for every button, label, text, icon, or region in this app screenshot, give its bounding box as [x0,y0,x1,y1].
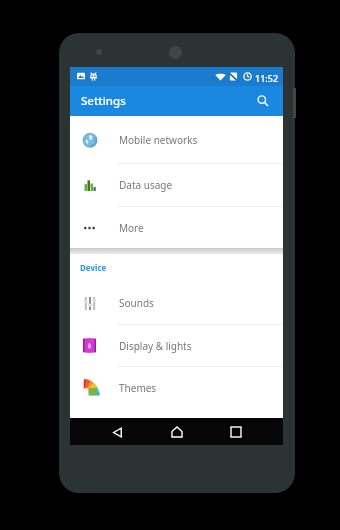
button[interactable]: Settings [70,86,283,116]
button[interactable]: Mobile networks [70,116,283,163]
staticText: Themes [119,381,157,395]
staticText: Display & lights [119,339,192,353]
button[interactable]: More [70,207,283,248]
staticText: Settings [81,93,126,109]
button[interactable]: Back [104,419,130,445]
button[interactable]: Sounds [70,282,283,324]
staticText: More [119,221,144,235]
staticText: 11:52 [255,72,279,84]
staticText: Mobile networks [119,133,198,147]
button[interactable]: Display & lights [70,325,283,366]
staticText: Sounds [119,296,154,310]
button[interactable]: Data usage [70,164,283,206]
button[interactable]: Recents [223,419,249,445]
staticText: Data usage [119,178,173,192]
button[interactable]: Home [164,419,190,445]
button[interactable]: Search [253,91,273,111]
staticText: Device [80,262,107,273]
button[interactable]: Themes [70,367,283,409]
